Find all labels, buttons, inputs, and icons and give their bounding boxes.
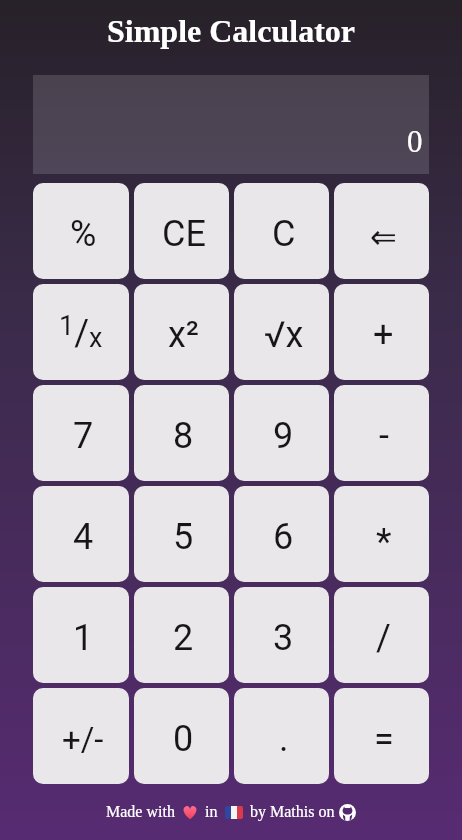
- staticText: 7: [73, 415, 94, 457]
- staticText: Simple Calculator: [107, 13, 355, 48]
- button[interactable]: -: [334, 385, 429, 481]
- staticText: Made with: [106, 803, 179, 821]
- button[interactable]: 9: [234, 385, 329, 481]
- button[interactable]: =: [334, 688, 429, 784]
- button[interactable]: 1/x: [33, 284, 129, 380]
- staticText: *: [376, 521, 392, 563]
- button[interactable]: 3: [234, 587, 329, 683]
- staticText: =: [374, 718, 394, 760]
- button[interactable]: +/-: [33, 688, 129, 784]
- button[interactable]: 1: [33, 587, 129, 683]
- button[interactable]: +: [334, 284, 429, 380]
- button[interactable]: 7: [33, 385, 129, 481]
- staticText: 1/x: [59, 310, 103, 354]
- button[interactable]: 4: [33, 486, 129, 582]
- button[interactable]: 5: [134, 486, 229, 582]
- staticText: 4: [73, 516, 94, 558]
- staticText: 1: [73, 617, 94, 659]
- button[interactable]: .: [234, 688, 329, 784]
- staticText: in: [201, 803, 222, 821]
- button[interactable]: ⇐: [334, 183, 429, 279]
- button[interactable]: 2: [134, 587, 229, 683]
- staticText: ⇐: [370, 218, 397, 255]
- button[interactable]: 6: [234, 486, 329, 582]
- staticText: CE: [162, 213, 206, 255]
- staticText: C: [272, 213, 296, 255]
- staticText: -: [379, 415, 389, 457]
- staticText: 9: [273, 415, 294, 457]
- button[interactable]: *: [334, 486, 429, 582]
- staticText: 3: [273, 617, 294, 659]
- staticText: %: [70, 213, 97, 255]
- button[interactable]: 0: [134, 688, 229, 784]
- button[interactable]: 8: [134, 385, 229, 481]
- staticText: √x: [264, 314, 304, 356]
- staticText: 5: [173, 516, 194, 558]
- staticText: 0: [173, 718, 194, 760]
- button[interactable]: CE: [134, 183, 229, 279]
- staticText: +/-: [62, 720, 104, 759]
- button[interactable]: x²: [134, 284, 229, 380]
- staticText: x²: [168, 314, 200, 356]
- staticText: 6: [273, 516, 294, 558]
- staticText: +: [373, 314, 394, 356]
- button[interactable]: √x: [234, 284, 329, 380]
- button[interactable]: /: [334, 587, 429, 683]
- staticText: by Mathis on: [246, 803, 339, 821]
- staticText: 8: [173, 415, 194, 457]
- staticText: .: [279, 718, 289, 760]
- button[interactable]: C: [234, 183, 329, 279]
- staticText: 2: [173, 617, 194, 659]
- button[interactable]: %: [33, 183, 129, 279]
- staticText: /: [376, 617, 391, 659]
- staticText: 0: [407, 124, 423, 158]
